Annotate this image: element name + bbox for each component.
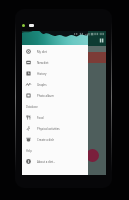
button[interactable]: About a diet... bbox=[22, 156, 88, 167]
button[interactable]: My diet bbox=[22, 46, 88, 57]
button[interactable]: Add bbox=[86, 149, 99, 162]
staticText: Help bbox=[26, 149, 32, 153]
staticText: Database bbox=[26, 105, 38, 109]
button[interactable]: Photo album bbox=[22, 90, 88, 101]
staticText: Food bbox=[37, 116, 44, 120]
button[interactable]: Create a dish bbox=[22, 134, 88, 145]
staticText: About a diet... bbox=[37, 160, 56, 164]
staticText: My diet bbox=[37, 50, 47, 54]
staticText: Create a dish bbox=[37, 138, 55, 142]
staticText: Physical activities bbox=[37, 127, 60, 131]
staticText: Graphs bbox=[37, 83, 47, 87]
staticText: New diet bbox=[37, 61, 49, 65]
button[interactable]: More options bbox=[99, 38, 104, 43]
button[interactable]: New diet bbox=[22, 57, 88, 68]
staticText: Photo album bbox=[37, 94, 54, 98]
staticText: History bbox=[37, 72, 47, 76]
button[interactable]: History bbox=[22, 68, 88, 79]
button[interactable]: Food bbox=[22, 112, 88, 123]
button[interactable]: Physical activities bbox=[22, 123, 88, 134]
button[interactable]: Graphs bbox=[22, 79, 88, 90]
